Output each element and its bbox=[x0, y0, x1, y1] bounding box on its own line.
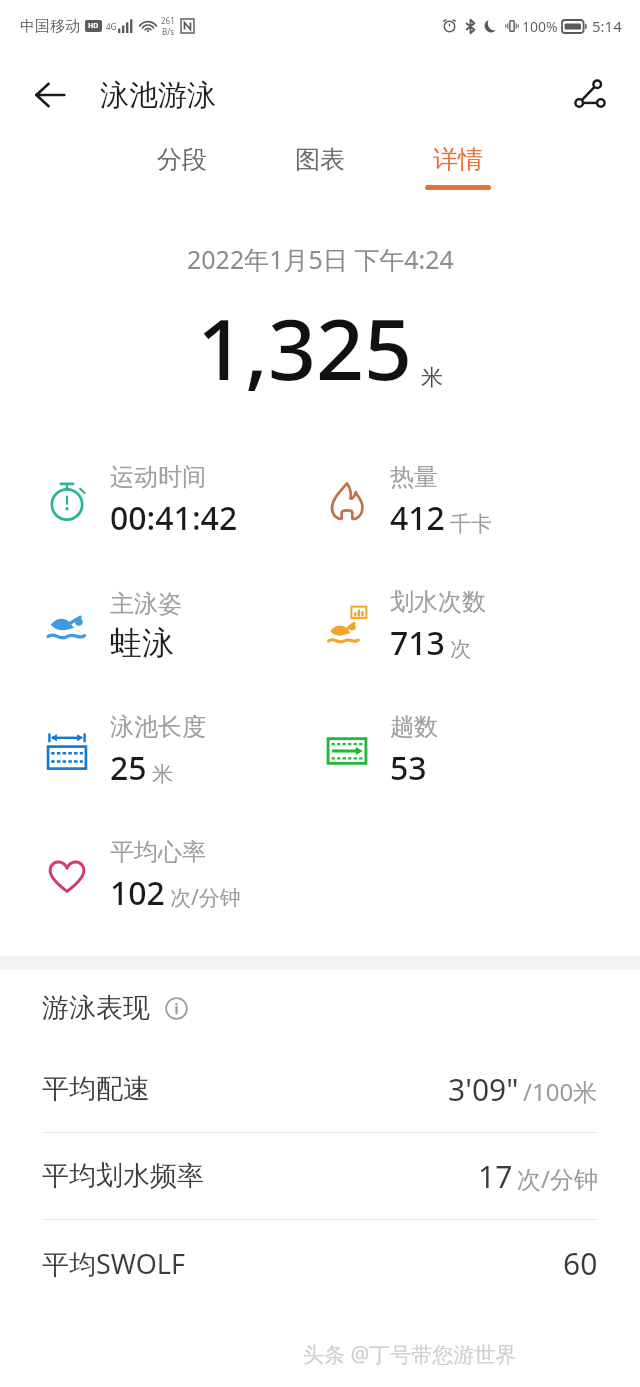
staticText: 4G bbox=[106, 21, 117, 32]
button[interactable]: Back bbox=[24, 69, 76, 121]
staticText: 图表 bbox=[295, 144, 345, 175]
staticText: 运动时间 bbox=[110, 462, 206, 492]
button[interactable]: 趟数 bbox=[320, 688, 640, 813]
staticText: 中国移动 bbox=[20, 17, 80, 36]
button[interactable]: 运动时间 bbox=[0, 438, 320, 563]
staticText: 100% bbox=[522, 17, 558, 36]
button[interactable]: Share bbox=[562, 67, 618, 123]
staticText: 25 bbox=[110, 746, 147, 790]
staticText: 米 bbox=[152, 761, 173, 787]
staticText: 102 bbox=[110, 871, 165, 915]
button[interactable]: 平均划水频率 bbox=[0, 1133, 640, 1219]
button[interactable]: 泳池长度 bbox=[0, 688, 320, 813]
staticText: 平均划水频率 bbox=[42, 1159, 204, 1193]
staticText: 次/分钟 bbox=[517, 1162, 598, 1195]
staticText: 趟数 bbox=[390, 712, 438, 742]
staticText: 泳池游泳 bbox=[100, 77, 216, 114]
staticText: 3'09" bbox=[448, 1069, 519, 1110]
staticText: B/s bbox=[162, 26, 175, 37]
staticText: 261 bbox=[161, 15, 175, 26]
staticText: 17 bbox=[478, 1156, 513, 1197]
staticText: 平均配速 bbox=[42, 1072, 150, 1106]
staticText: 蛙泳 bbox=[110, 623, 174, 663]
staticText: HD bbox=[88, 21, 99, 31]
button[interactable]: 平均心率 bbox=[0, 813, 320, 938]
staticText: 00:41:42 bbox=[110, 496, 238, 540]
button[interactable]: 图表 bbox=[268, 138, 372, 191]
staticText: 平均心率 bbox=[110, 837, 206, 867]
staticText: 分段 bbox=[157, 144, 207, 175]
button[interactable]: 平均配速 bbox=[0, 1046, 640, 1132]
staticText: 划水次数 bbox=[390, 587, 486, 617]
staticText: 千卡 bbox=[450, 511, 492, 537]
staticText: 详情 bbox=[433, 144, 483, 175]
staticText: 米 bbox=[421, 364, 443, 392]
staticText: 2022年1月5日 下午4:24 bbox=[187, 242, 454, 276]
staticText: 热量 bbox=[390, 462, 438, 492]
staticText: 主泳姿 bbox=[110, 589, 182, 619]
staticText: 412 bbox=[390, 496, 445, 540]
staticText: /100米 bbox=[523, 1075, 598, 1108]
button[interactable]: 平均SWOLF bbox=[0, 1220, 640, 1306]
staticText: 713 bbox=[390, 621, 445, 665]
button[interactable]: 分段 bbox=[130, 138, 234, 191]
staticText: 次 bbox=[450, 636, 471, 662]
button[interactable]: 详情 bbox=[406, 138, 510, 196]
button[interactable]: Info bbox=[160, 992, 192, 1024]
button[interactable]: 划水次数 bbox=[320, 563, 640, 688]
staticText: 头条 @丁号带您游世界 bbox=[303, 1340, 517, 1369]
staticText: 1,325 bbox=[197, 290, 413, 404]
staticText: 60 bbox=[563, 1243, 598, 1284]
staticText: 5:14 bbox=[592, 16, 622, 36]
staticText: 次/分钟 bbox=[170, 883, 241, 912]
button[interactable]: 热量 bbox=[320, 438, 640, 563]
staticText: 平均SWOLF bbox=[42, 1245, 185, 1282]
button[interactable]: 主泳姿 bbox=[0, 563, 320, 688]
staticText: 游泳表现 bbox=[42, 991, 150, 1025]
staticText: 泳池长度 bbox=[110, 712, 206, 742]
staticText: 53 bbox=[390, 746, 427, 790]
